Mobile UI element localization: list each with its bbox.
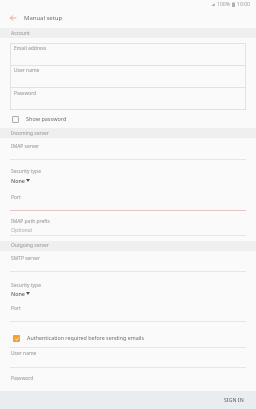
staticText: Password (14, 90, 37, 97)
button[interactable] (10, 347, 246, 367)
button[interactable]: Authentication required before sending e… (10, 330, 246, 346)
staticText: Manual setup (24, 14, 63, 22)
button[interactable]: SIGN IN (216, 391, 252, 407)
button[interactable] (10, 300, 246, 321)
staticText: SIGN IN (224, 396, 244, 403)
staticText: 100% (217, 1, 230, 8)
staticText: Optional (11, 226, 33, 233)
staticText: Authentication required before sending e… (27, 334, 144, 341)
button[interactable] (10, 189, 246, 210)
button[interactable] (10, 138, 246, 159)
staticText: User name (14, 67, 40, 74)
staticText: Password (11, 375, 34, 382)
button[interactable] (10, 65, 246, 87)
staticText: 10:00 (237, 1, 251, 8)
staticText: SMTP server (11, 255, 40, 262)
staticText: Security type (11, 168, 41, 175)
button[interactable]: Show password (10, 112, 132, 127)
button[interactable] (10, 289, 38, 299)
staticText: IMAP path prefix (11, 218, 50, 225)
staticText: Port (11, 194, 21, 201)
button[interactable] (10, 87, 246, 110)
button[interactable] (10, 214, 246, 235)
staticText: Port (11, 305, 21, 312)
button[interactable] (10, 251, 246, 272)
staticText: Security type (11, 282, 41, 289)
staticText: Account (11, 30, 30, 37)
staticText: None (11, 290, 25, 297)
button[interactable] (10, 368, 246, 390)
button[interactable]: Navigate up (5, 10, 21, 26)
staticText: None (11, 177, 25, 184)
staticText: IMAP server (11, 143, 40, 150)
staticText: Incoming server (11, 130, 49, 137)
staticText: Email address (14, 45, 47, 52)
button[interactable] (10, 175, 38, 185)
staticText: User name (11, 350, 37, 357)
staticText: Show password (26, 115, 67, 122)
staticText: Outgoing server (11, 242, 49, 249)
button[interactable] (10, 43, 246, 65)
